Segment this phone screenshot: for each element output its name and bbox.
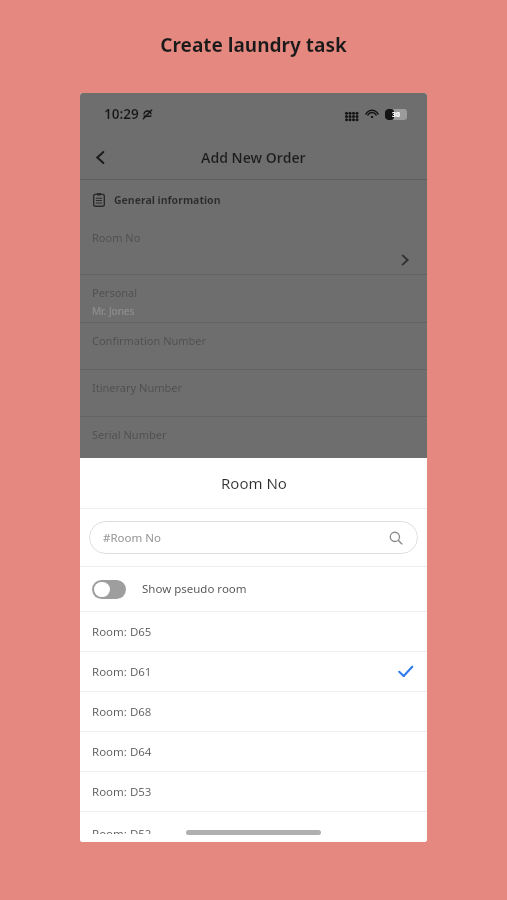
staticText: Room No [92,230,141,245]
staticText: Show pseudo room [142,581,247,597]
staticText: #Room No [103,530,161,546]
staticText: Confirmation Number [92,333,207,348]
button[interactable]: Show pseudo room [80,567,427,611]
button[interactable]: Room: D53 [80,772,427,811]
staticText: Room: D61 [92,664,152,680]
button[interactable]: Room: D68 [80,692,427,731]
button[interactable]: Room: D61 [80,652,427,691]
staticText: Room: D53 [92,784,152,800]
staticText: 30 [392,110,401,120]
staticText: General information [114,193,221,207]
staticText: 10:29 [104,105,139,123]
staticText: Mr. Jones [92,304,135,318]
button[interactable]: Room: D64 [80,732,427,771]
staticText: Room: D64 [92,744,152,760]
staticText: Room: D52 [92,826,152,834]
staticText: Room: D68 [92,704,152,720]
button[interactable]: Back [80,137,120,177]
staticText: Serial Number [92,427,167,442]
staticText: Add New Order [201,148,306,167]
button[interactable]: Room: D65 [80,612,427,651]
staticText: Room No [221,473,287,493]
staticText: Personal [92,285,138,300]
staticText: Create laundry task [0,32,507,58]
button[interactable]: #Room No [89,521,418,554]
staticText: Room: D65 [92,624,152,640]
button[interactable]: Room: D52 [80,812,427,834]
staticText: Itinerary Number [92,380,183,395]
